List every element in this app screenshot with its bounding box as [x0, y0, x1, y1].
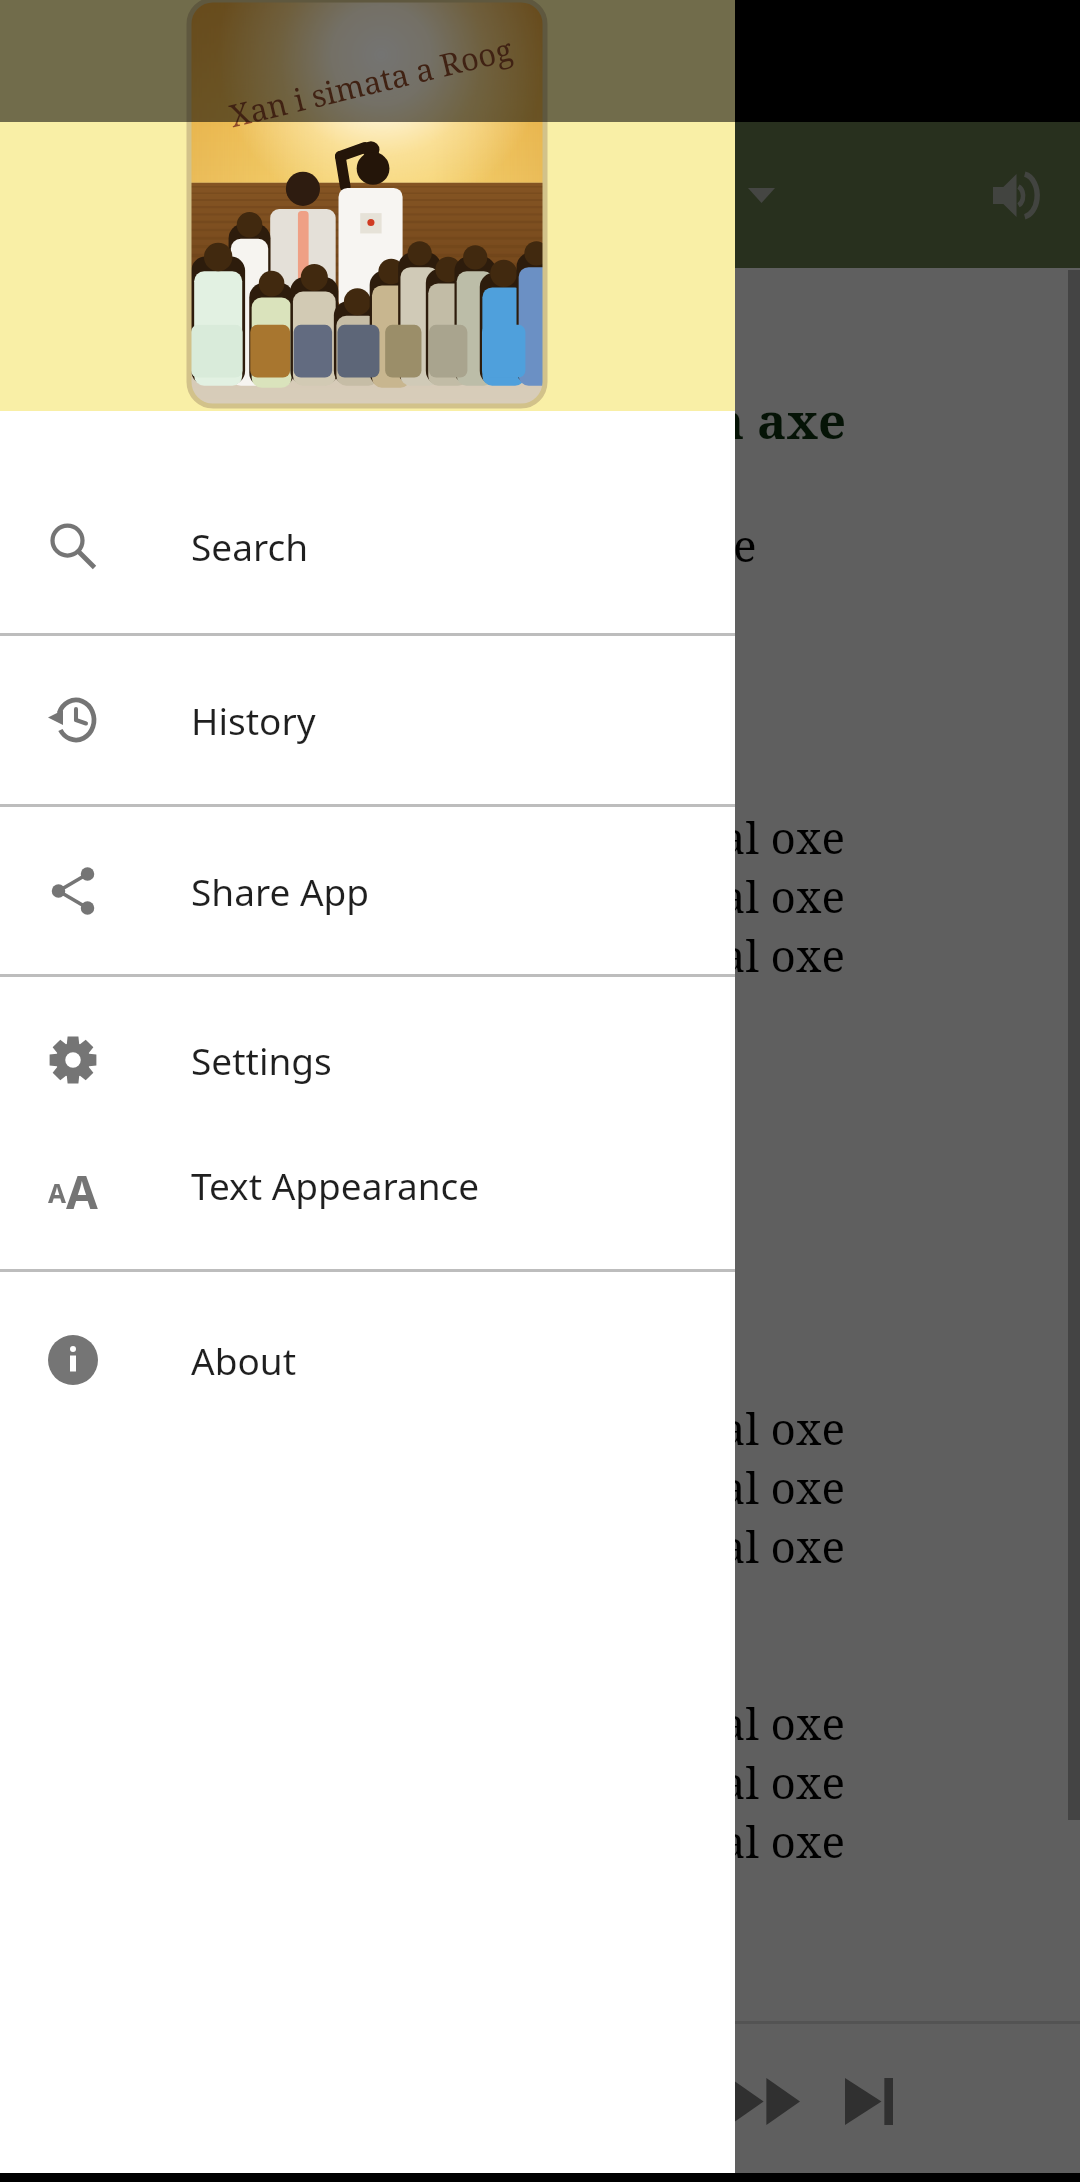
button[interactable]: Settings [0, 997, 735, 1123]
staticText: History [191, 695, 316, 745]
staticText: Jamono ju nu nekke nii Mbaa Faal oxe [44, 1516, 1044, 1576]
staticText: Waa kër ge ñépp dañuy man axe [44, 387, 1044, 454]
button[interactable]: Share App [0, 807, 735, 974]
staticText: Text Appearance [191, 1160, 480, 1210]
staticText: Jamono ju nu nekke nii Mbaa Faal oxe [44, 807, 1044, 867]
staticText: Jamono ju nu nekke nii Mbaa Faal oxe [44, 1398, 1044, 1458]
button[interactable]: History [0, 636, 735, 804]
button[interactable]: Search [0, 459, 735, 633]
staticText: Jamono ju nu nekke nii Mbaa Faal oxe [44, 1811, 1044, 1871]
staticText: A [66, 1160, 98, 1210]
staticText: A [48, 1175, 66, 1210]
staticText: About [191, 1335, 297, 1385]
button[interactable]: Volume [966, 145, 1066, 245]
staticText: Bokk na ci nit ñi daal di fii wax ne [44, 515, 1044, 575]
staticText: Jamono ju nu nekke nii Mbaa Faal oxe [44, 1752, 1044, 1812]
staticText: Search [191, 521, 309, 571]
button[interactable]: A [0, 1123, 735, 1247]
staticText: Xan i simata a Roog [225, 28, 517, 136]
button[interactable]: Next [817, 2042, 921, 2160]
button[interactable]: About [0, 1279, 735, 1441]
staticText: Settings [191, 1035, 332, 1085]
staticText: Jamono ju nu nekke nii Mbaa Faal oxe [44, 1457, 1044, 1517]
button[interactable]: Fast forward [713, 2042, 817, 2160]
staticText: Jamono ju nu nekke nii Mbaa Faal oxe [44, 866, 1044, 926]
staticText: Share App [191, 866, 370, 916]
staticText: Jamono ju nu nekke nii Mbaa Faal oxe [44, 1693, 1044, 1753]
staticText: Jamono ju nu nekke nii Mbaa Faal oxe [44, 925, 1044, 985]
button[interactable]: Choose language [711, 145, 811, 245]
